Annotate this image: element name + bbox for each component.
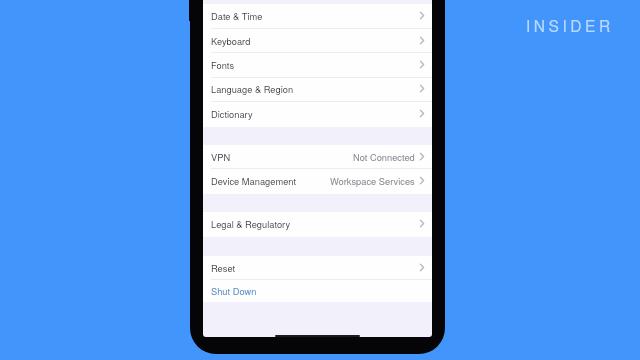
button[interactable]: VPN — [203, 145, 432, 170]
staticText: Not Connected — [353, 150, 415, 163]
staticText: VPN — [211, 150, 231, 163]
button[interactable]: Reset — [203, 256, 432, 280]
button[interactable]: Shut Down — [203, 280, 432, 302]
staticText: INSIDER — [526, 14, 614, 36]
button[interactable]: Fonts — [203, 53, 432, 78]
button[interactable]: Legal & Regulatory — [203, 212, 432, 237]
button[interactable]: Language & Region — [203, 77, 432, 102]
staticText: Workspace Services — [330, 174, 415, 187]
staticText: Date & Time — [211, 9, 263, 22]
staticText: Keyboard — [211, 34, 251, 47]
button[interactable]: Date & Time — [203, 4, 432, 29]
staticText: Reset — [211, 261, 236, 274]
button[interactable]: Device Management — [203, 169, 432, 194]
staticText: Shut Down — [211, 284, 257, 297]
staticText: Language & Region — [211, 82, 294, 95]
staticText: Legal & Regulatory — [211, 217, 291, 230]
staticText: Fonts — [211, 58, 235, 71]
button[interactable]: INSIDER logo — [526, 14, 614, 36]
button[interactable]: Dictionary — [203, 102, 432, 127]
button[interactable]: Keyboard — [203, 29, 432, 54]
staticText: Dictionary — [211, 107, 253, 120]
staticText: Device Management — [211, 174, 297, 187]
